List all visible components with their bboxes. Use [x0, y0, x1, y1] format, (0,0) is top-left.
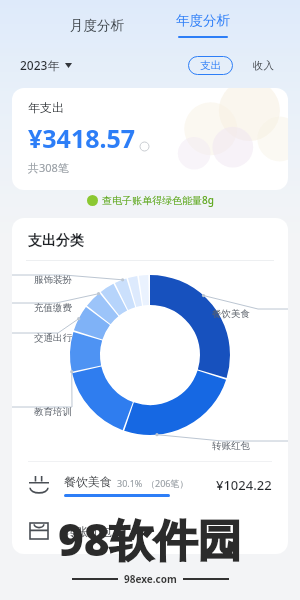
staticText: 餐饮美食 [212, 308, 250, 320]
staticText: 支出分类 [28, 232, 84, 250]
staticText: 30.1% [117, 477, 143, 489]
staticText: 月度分析 [70, 17, 124, 34]
button[interactable]: 支出 [188, 56, 233, 75]
staticText: ¥1024.22 [216, 476, 272, 494]
button[interactable]: 收入 [247, 55, 280, 76]
staticText: 查电子账单得绿色能量8g [102, 193, 214, 207]
staticText: 餐饮美食 [64, 474, 112, 489]
staticText: 收入 [253, 59, 274, 72]
staticText: 98exe.com [124, 572, 177, 586]
button[interactable]: 年支出 [12, 88, 288, 190]
staticText: 2023年 [20, 57, 60, 73]
staticText: 教育培训 [34, 406, 72, 418]
other: 餐饮美食 [28, 474, 50, 496]
staticText: 服饰装扮 [34, 274, 72, 286]
staticText: 98软件园 [58, 509, 242, 569]
other: 说明 [140, 142, 149, 151]
button[interactable]: 餐饮美食 [12, 462, 288, 508]
staticText: 转账红包 [212, 440, 250, 452]
staticText: 转账红包 [64, 524, 112, 539]
button[interactable]: 查电子账单得绿色能量8g [0, 190, 300, 210]
button[interactable]: 年度分析 [164, 10, 242, 40]
staticText: （206笔） [146, 477, 189, 489]
staticText: 共308笔 [28, 160, 69, 175]
staticText: 充值缴费 [34, 302, 72, 314]
other: 转账红包 [28, 520, 50, 542]
button[interactable]: 月度分析 [58, 9, 136, 42]
button[interactable]: 转账红包 [12, 508, 288, 554]
button[interactable]: 2023年 [20, 53, 72, 77]
staticText: 交通出行 [34, 332, 72, 344]
staticText: 支出 [200, 59, 221, 72]
staticText: 年度分析 [176, 12, 230, 29]
staticText: ¥3418.57 [28, 121, 136, 155]
staticText: 年支出 [28, 100, 64, 115]
